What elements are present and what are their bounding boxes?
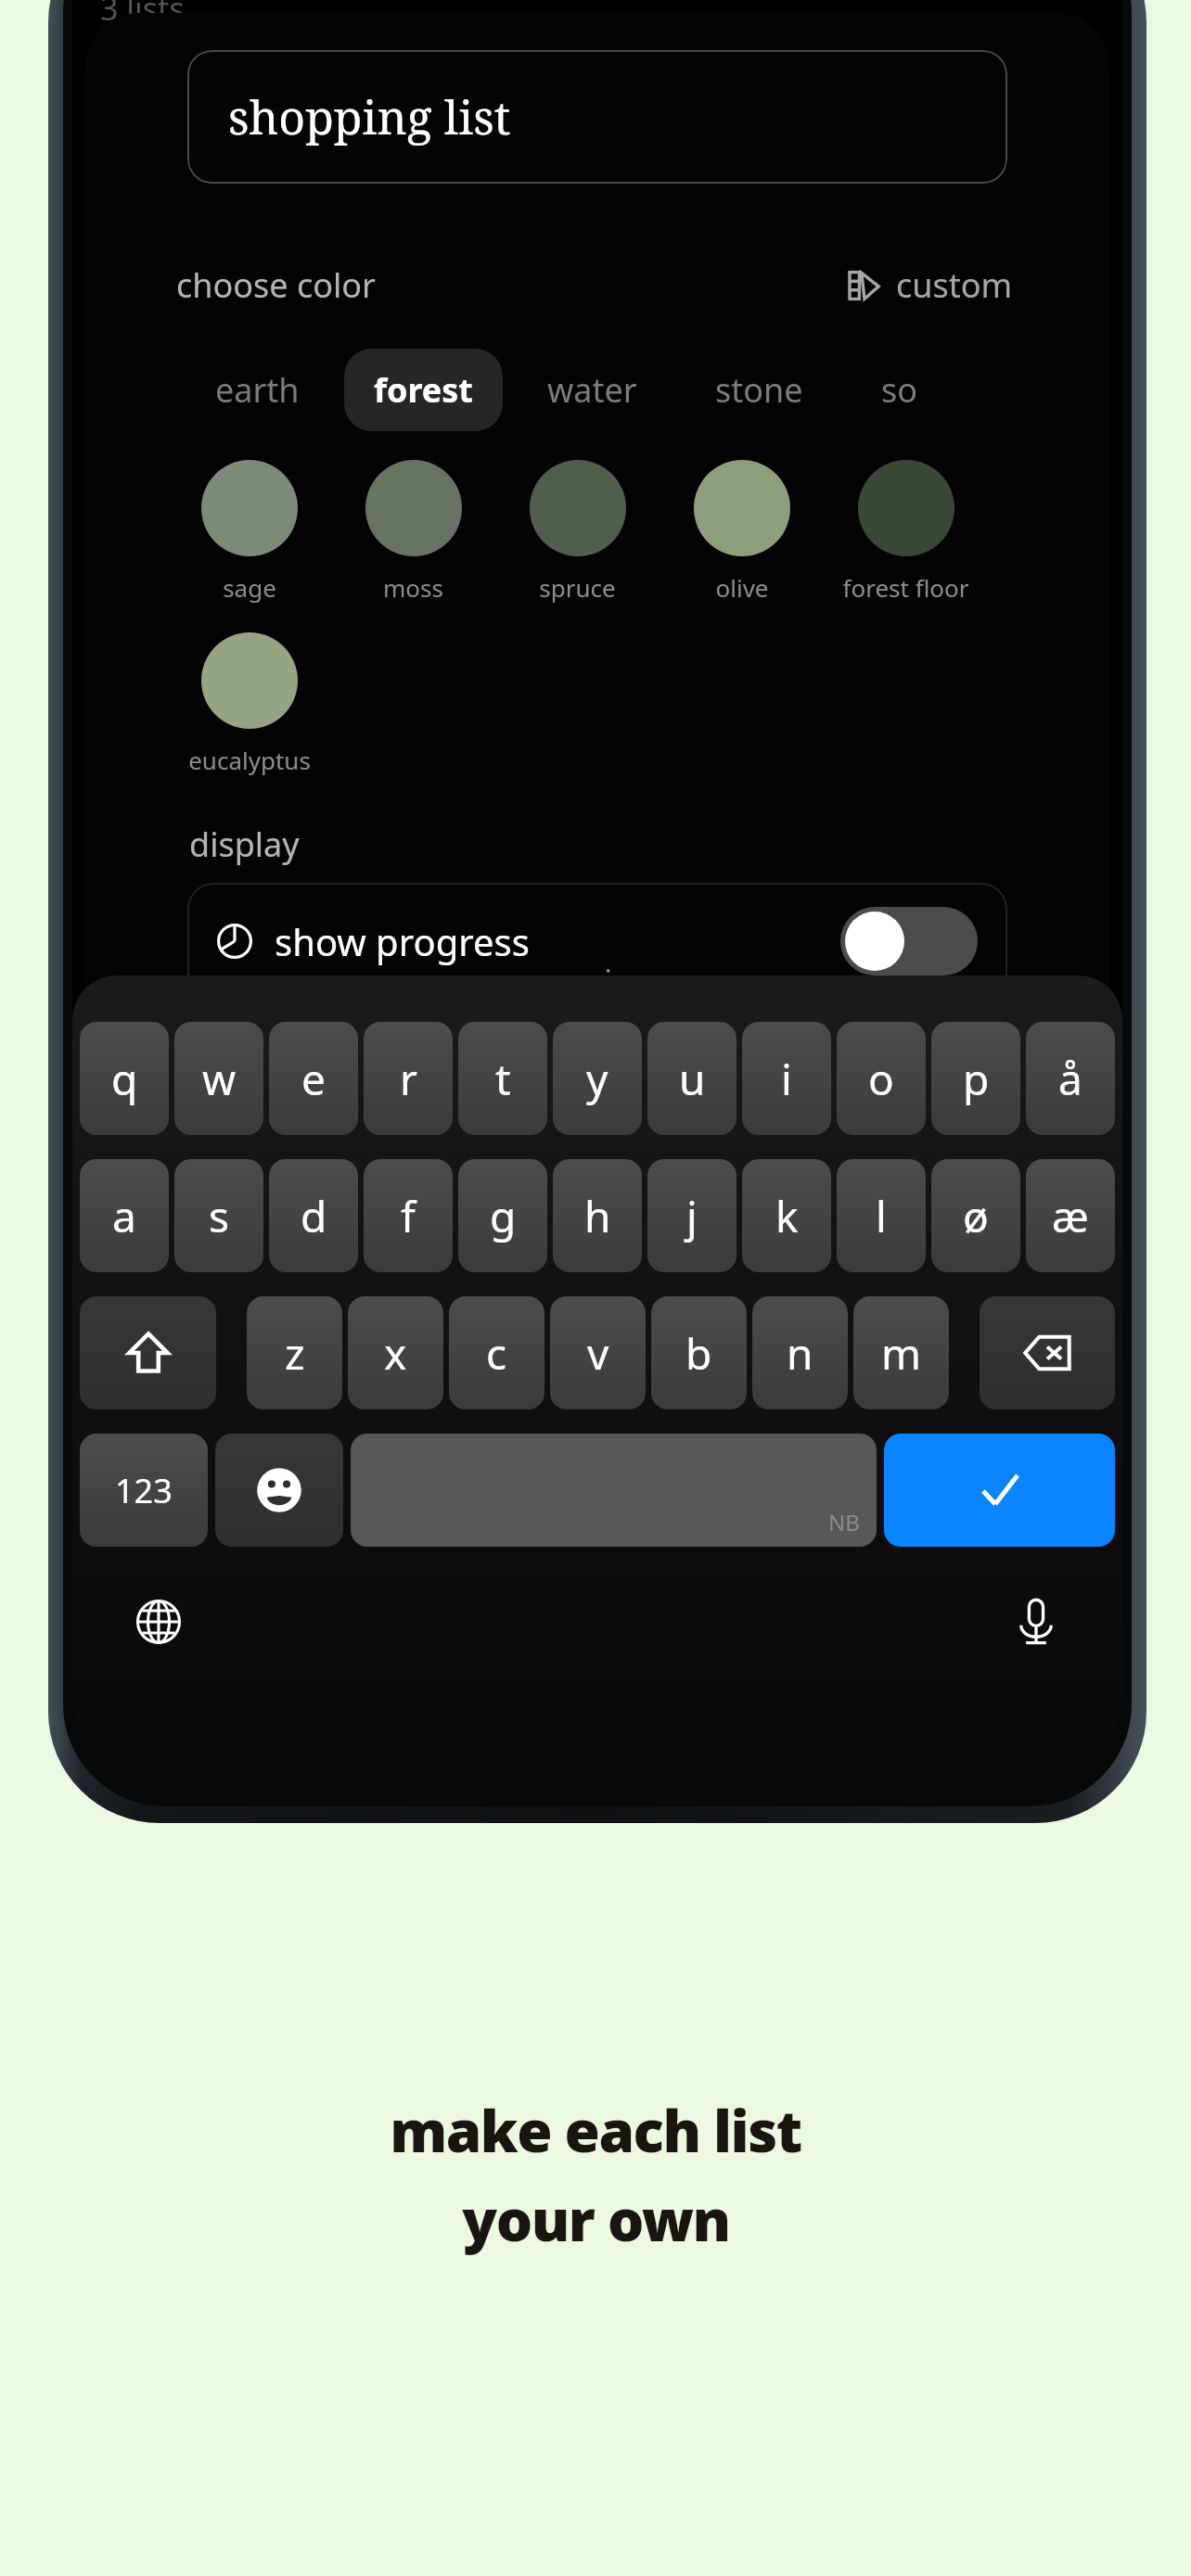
button[interactable]: custom (840, 257, 1018, 313)
staticText: y (586, 1050, 608, 1108)
staticText: forest (374, 367, 473, 413)
button[interactable]: n (752, 1296, 848, 1409)
button[interactable]: h (553, 1159, 642, 1272)
staticText: z (285, 1324, 305, 1383)
button[interactable]: forest floor (824, 460, 988, 604)
staticText: k (775, 1187, 799, 1245)
button[interactable]: l (837, 1159, 926, 1272)
staticText: your own (462, 2180, 730, 2258)
button[interactable]: o (837, 1022, 926, 1135)
button[interactable]: Change keyboard language (122, 1586, 195, 1658)
button[interactable]: k (742, 1159, 831, 1272)
button[interactable]: r (364, 1022, 453, 1135)
staticText: display (189, 822, 300, 867)
button[interactable]: s (174, 1159, 263, 1272)
button[interactable]: d (269, 1159, 358, 1272)
staticText: c (486, 1324, 507, 1383)
button[interactable]: p (931, 1022, 1020, 1135)
button[interactable]: Emoji (215, 1434, 343, 1547)
button[interactable]: Voice input (1000, 1586, 1072, 1658)
staticText: choose color (176, 262, 376, 308)
button[interactable]: olive (660, 460, 824, 604)
button[interactable]: a (80, 1159, 169, 1272)
staticText: forest floor (842, 571, 969, 604)
button[interactable]: Backspace (980, 1296, 1115, 1409)
button[interactable]: f (364, 1159, 453, 1272)
button[interactable]: moss (331, 460, 495, 604)
staticText: spruce (539, 571, 616, 604)
staticText: j (686, 1187, 698, 1245)
button[interactable]: z (247, 1296, 342, 1409)
button[interactable]: t (458, 1022, 547, 1135)
staticText: eucalyptus (188, 744, 311, 776)
staticText: stone (715, 367, 803, 413)
staticText: t (495, 1050, 511, 1108)
staticText: p (963, 1050, 990, 1108)
button[interactable]: Enter (884, 1434, 1115, 1547)
staticText: earth (215, 367, 300, 413)
button[interactable]: i (742, 1022, 831, 1135)
button[interactable]: m (853, 1296, 949, 1409)
button[interactable]: y (553, 1022, 642, 1135)
staticText: b (685, 1324, 712, 1383)
staticText: u (679, 1050, 706, 1108)
button[interactable]: shopping list (187, 50, 1007, 184)
button[interactable]: c (449, 1296, 544, 1409)
staticText: shopping list (228, 85, 511, 148)
button[interactable]: j (647, 1159, 736, 1272)
button[interactable]: water (518, 349, 667, 431)
button[interactable]: x (348, 1296, 443, 1409)
button[interactable]: w (174, 1022, 263, 1135)
staticText: x (384, 1324, 407, 1383)
staticText: sage (223, 571, 276, 604)
button[interactable]: å (1026, 1022, 1115, 1135)
staticText: æ (1052, 1187, 1089, 1245)
button[interactable]: q (80, 1022, 169, 1135)
staticText: water (547, 367, 637, 413)
button[interactable]: v (550, 1296, 646, 1409)
button[interactable]: sage (167, 460, 331, 604)
button[interactable]: eucalyptus (167, 632, 331, 776)
button[interactable]: forest (344, 349, 503, 431)
staticText: s (209, 1187, 230, 1245)
staticText: i (781, 1050, 792, 1108)
staticText: å (1058, 1050, 1082, 1108)
button[interactable]: e (269, 1022, 358, 1135)
staticText: n (787, 1324, 813, 1383)
staticText: r (400, 1050, 417, 1108)
staticText: h (584, 1187, 611, 1245)
staticText: v (587, 1324, 609, 1383)
staticText: a (112, 1187, 136, 1245)
button[interactable]: stone (685, 349, 833, 431)
button[interactable]: so (852, 349, 948, 431)
button[interactable]: spruce (495, 460, 660, 604)
staticText: g (490, 1187, 517, 1245)
staticText: preview (85, 961, 1109, 1001)
button[interactable]: g (458, 1159, 547, 1272)
button[interactable]: earth (186, 349, 329, 431)
staticText: l (876, 1187, 887, 1245)
staticText: moss (383, 571, 443, 604)
button[interactable]: u (647, 1022, 736, 1135)
staticText: o (868, 1050, 894, 1108)
staticText: NB (828, 1507, 860, 1537)
button[interactable]: b (651, 1296, 747, 1409)
staticText: custom (896, 262, 1013, 308)
staticText: 123 (115, 1468, 173, 1513)
button[interactable]: show progress (187, 883, 1007, 1000)
staticText: d (301, 1187, 327, 1245)
staticText: ø (963, 1187, 989, 1245)
staticText: w (202, 1050, 237, 1108)
button[interactable]: Space (351, 1434, 877, 1547)
button[interactable]: 123 (80, 1434, 208, 1547)
staticText: q (111, 1050, 138, 1108)
staticText: so (881, 367, 918, 413)
staticText: f (401, 1187, 416, 1245)
staticText: m (881, 1324, 922, 1383)
button[interactable]: æ (1026, 1159, 1115, 1272)
button[interactable]: ø (931, 1159, 1020, 1272)
staticText: make each list (390, 2091, 801, 2169)
staticText: show progress (275, 916, 530, 966)
staticText: 3 lists (100, 0, 185, 30)
button[interactable]: Shift (80, 1296, 216, 1409)
